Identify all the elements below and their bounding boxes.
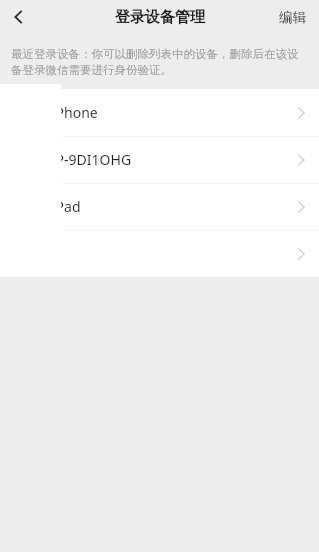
button[interactable]: iP-9DI1OHG xyxy=(0,136,319,183)
staticText: 编辑 xyxy=(279,9,306,26)
button[interactable]: iPhone xyxy=(0,89,319,136)
staticText: iPhone xyxy=(52,103,98,122)
staticText: iP-9DI1OHG xyxy=(52,150,132,169)
button[interactable]: 编辑 xyxy=(266,0,319,34)
staticText: 最近登录设备：你可以删除列表中的设备，删除后在该设备登录微信需要进行身份验证。 xyxy=(11,47,308,78)
button[interactable]: Back xyxy=(0,0,38,34)
staticText: 登录设备管理 xyxy=(115,8,205,27)
button[interactable]: iPad xyxy=(0,183,319,230)
staticText: iPad xyxy=(52,197,81,216)
